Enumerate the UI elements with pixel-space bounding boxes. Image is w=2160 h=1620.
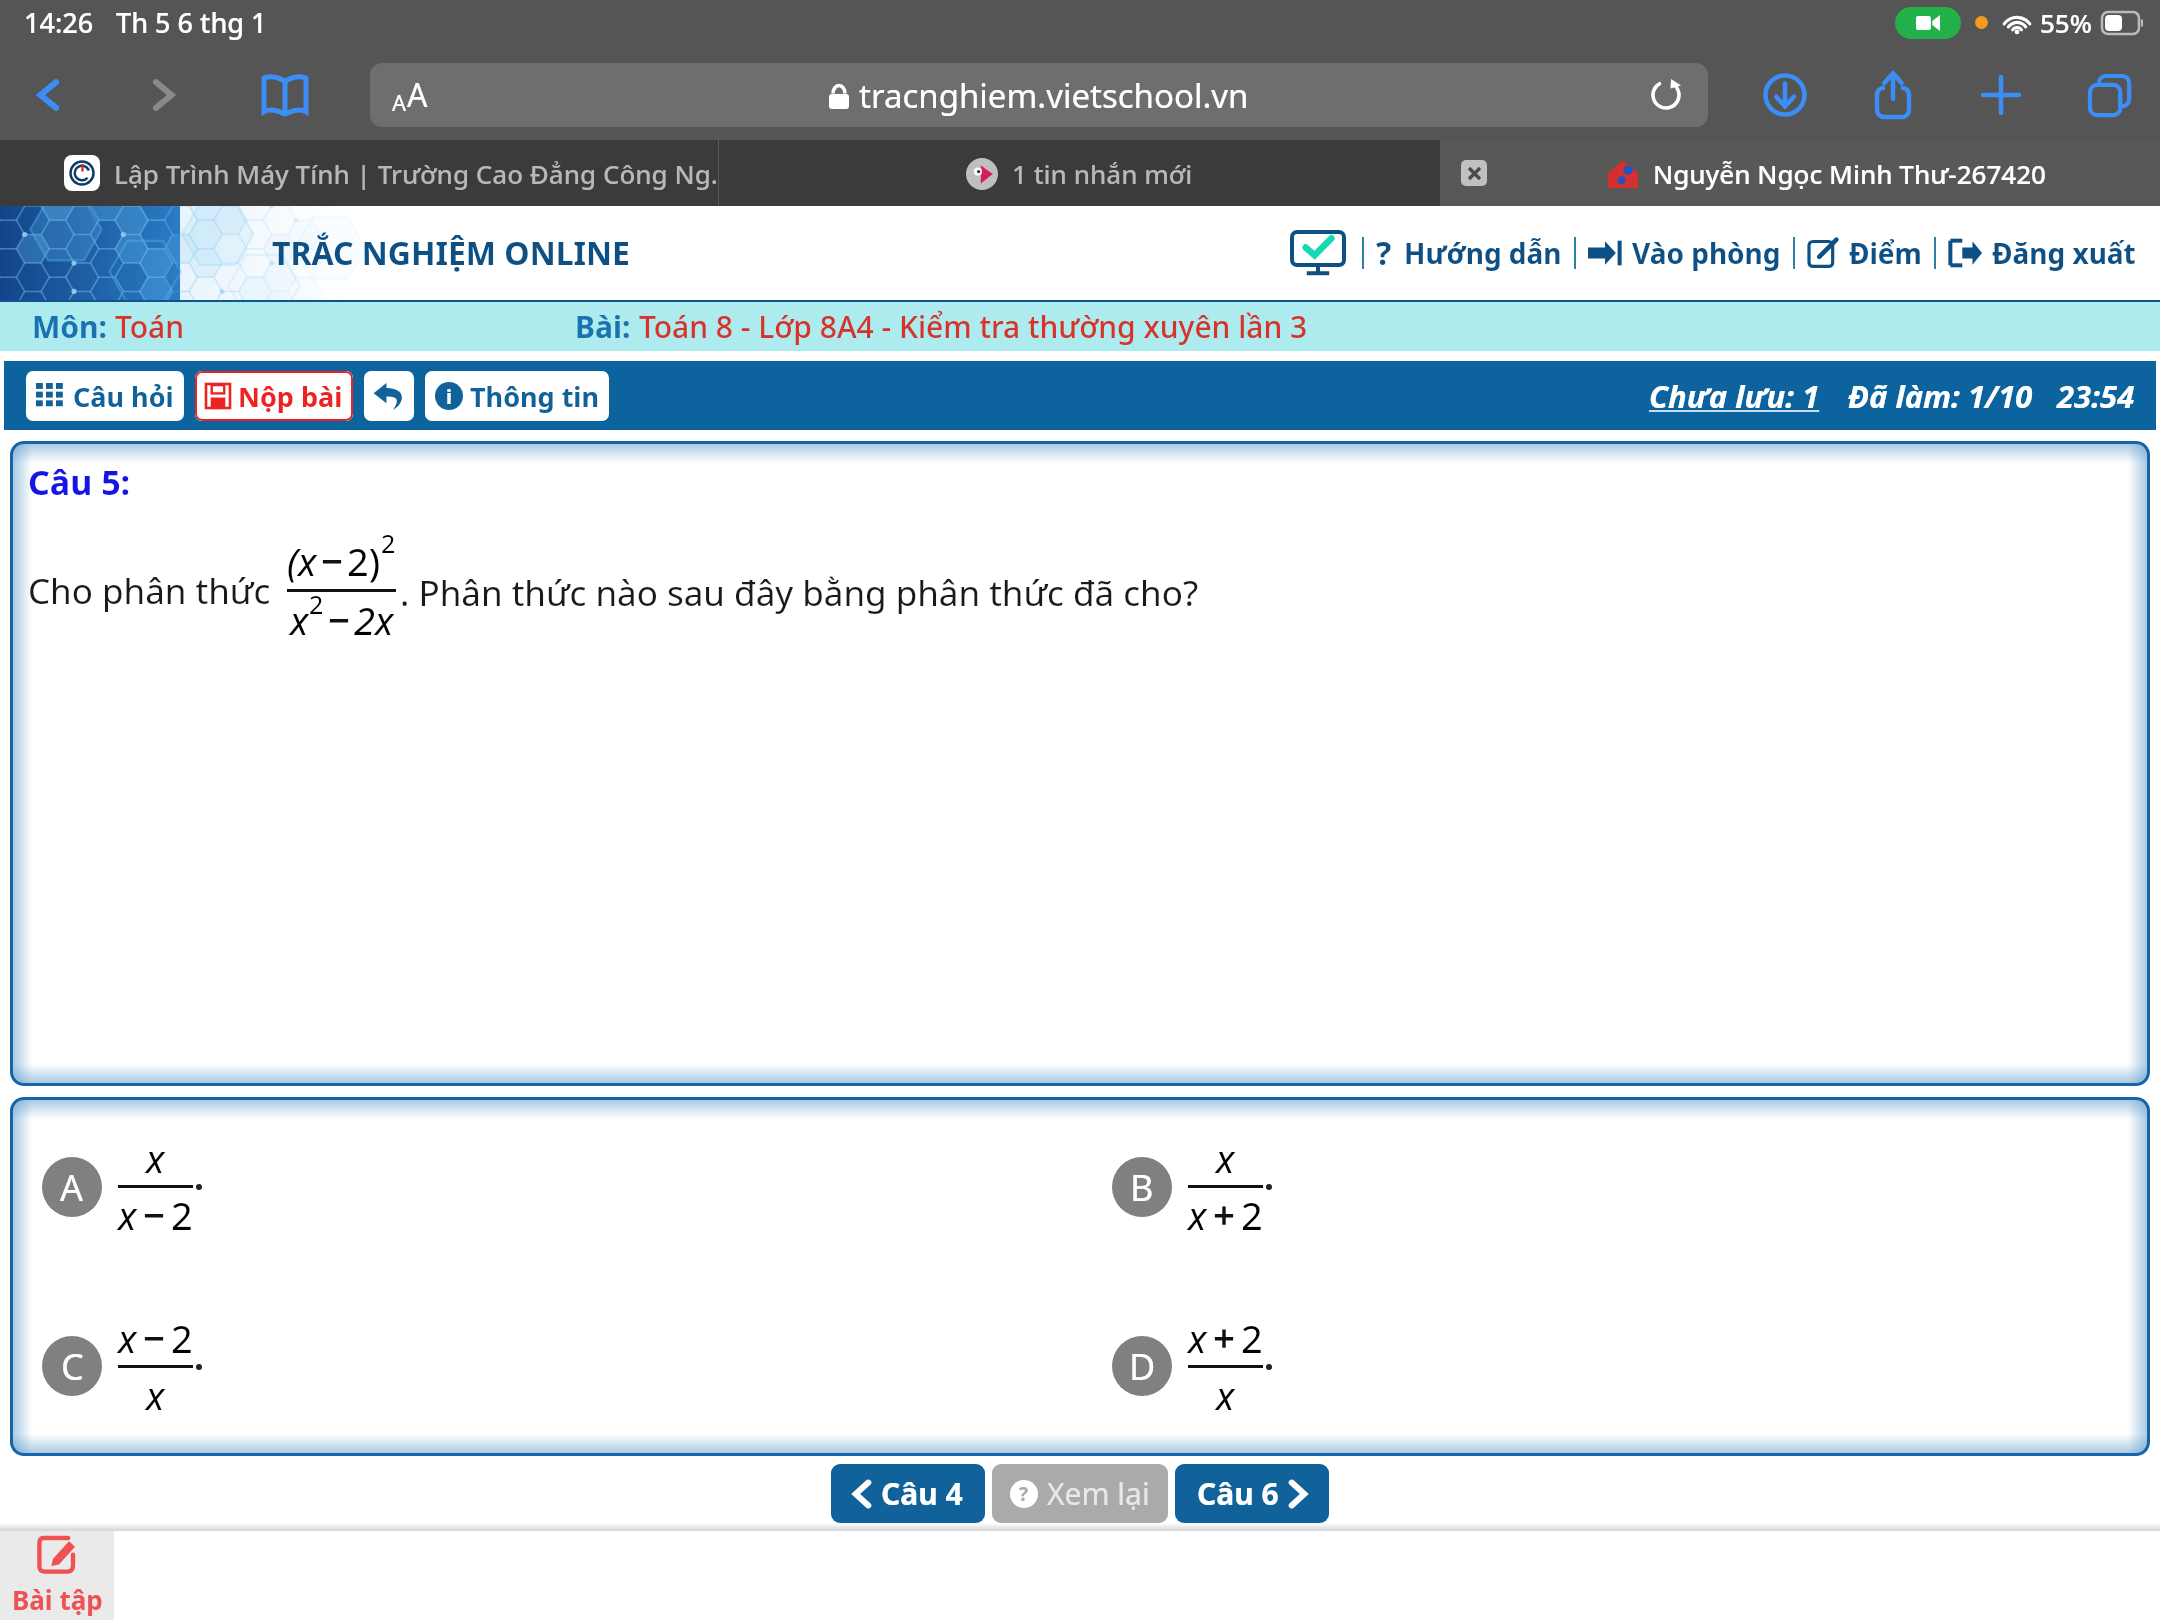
staticText: 2) xyxy=(347,535,381,587)
staticText: Lập Trình Máy Tính | Trường Cao Đẳng Côn… xyxy=(114,156,718,191)
button[interactable]: Downloads xyxy=(1756,66,1814,124)
button[interactable]: Check xyxy=(1286,226,1350,280)
button[interactable]: Forward xyxy=(134,67,190,123)
button[interactable]: Câu hỏi xyxy=(26,371,184,421)
button[interactable]: Nộp bài xyxy=(195,371,353,421)
staticText: x xyxy=(118,1189,137,1241)
staticText: x xyxy=(118,1312,137,1364)
staticText: A xyxy=(392,87,407,117)
button[interactable]: 1 tin nhắn mới xyxy=(719,140,1440,206)
staticText: B xyxy=(1130,1163,1154,1212)
staticText: Chưa lưu: 1 xyxy=(1649,375,1820,417)
staticText: D xyxy=(1129,1342,1156,1391)
staticText: ? xyxy=(1376,231,1392,275)
staticText: x xyxy=(1216,1369,1235,1421)
button[interactable]: New tab xyxy=(1972,66,2030,124)
button[interactable]: Close tab xyxy=(1440,140,2160,206)
button[interactable]: Câu 4 xyxy=(831,1464,985,1523)
button[interactable]: Câu 6 xyxy=(1175,1464,1329,1523)
staticText: 2 xyxy=(1241,1189,1263,1241)
staticText: tracnghiem.vietschool.vn xyxy=(859,73,1249,118)
staticText: Th 5 6 thg 1 xyxy=(116,4,267,41)
button[interactable]: C xyxy=(10,1276,1080,1456)
staticText: . Phân thức nào sau đây bằng phân thức đ… xyxy=(400,569,1199,617)
staticText: Đã làm: 1/10 xyxy=(1848,375,2033,417)
staticText: x xyxy=(146,1132,165,1184)
button[interactable]: D xyxy=(1080,1276,2150,1456)
staticText: Nộp bài xyxy=(238,378,343,415)
staticText: Bài: xyxy=(575,306,639,347)
staticText: A xyxy=(60,1163,84,1212)
staticText: 1 tin nhắn mới xyxy=(1012,156,1193,191)
staticText: A xyxy=(407,73,428,117)
staticText: Nguyễn Ngọc Minh Thư-267420 xyxy=(1653,156,2046,191)
button[interactable]: Lập Trình Máy Tính | Trường Cao Đẳng Côn… xyxy=(0,140,718,206)
staticText: x xyxy=(1216,1132,1235,1184)
button[interactable]: Bookmarks xyxy=(254,64,316,126)
button[interactable]: B xyxy=(1080,1097,2150,1276)
staticText: 2 xyxy=(309,587,324,621)
button[interactable]: i xyxy=(425,371,609,421)
button[interactable]: Bài tập xyxy=(0,1531,114,1620)
button[interactable]: ? xyxy=(992,1464,1168,1523)
staticText: Câu 4 xyxy=(881,1473,963,1514)
button[interactable]: Back xyxy=(364,371,414,421)
staticText: Bài tập xyxy=(12,1582,103,1617)
button[interactable]: ? xyxy=(1376,231,1562,275)
button[interactable]: Vào phòng xyxy=(1588,234,1781,272)
staticText: i xyxy=(446,383,452,410)
staticText: 2 xyxy=(381,526,396,560)
staticText: Toán 8 - Lớp 8A4 - Kiểm tra thường xuyên… xyxy=(639,306,1308,347)
staticText: x xyxy=(146,1369,165,1421)
button[interactable]: Show tabs xyxy=(2080,66,2138,124)
staticText: (x xyxy=(287,535,317,587)
staticText: Toán xyxy=(115,306,185,347)
button[interactable]: Share xyxy=(1864,66,1922,124)
staticText: x xyxy=(1188,1312,1207,1364)
button[interactable]: Close tab xyxy=(1461,160,1487,186)
button[interactable]: Back xyxy=(22,67,78,123)
button[interactable]: Reload xyxy=(1646,75,1686,115)
staticText: Môn: xyxy=(32,306,115,347)
staticText: TRẮC NGHIỆM ONLINE xyxy=(272,231,630,275)
staticText: Câu 5: xyxy=(28,459,131,505)
button[interactable]: Đăng xuất xyxy=(1948,234,2136,272)
staticText: x xyxy=(290,594,309,646)
staticText: 2 xyxy=(1241,1312,1263,1364)
staticText: Thông tin xyxy=(470,378,599,415)
staticText: 2 xyxy=(171,1189,193,1241)
button[interactable]: A xyxy=(370,63,1708,127)
staticText: 2 xyxy=(171,1312,193,1364)
button[interactable]: A xyxy=(10,1097,1080,1276)
staticText: Vào phòng xyxy=(1632,234,1781,272)
staticText: Hướng dẫn xyxy=(1404,234,1562,272)
staticText: Đăng xuất xyxy=(1992,234,2136,272)
staticText: C xyxy=(61,1342,84,1391)
staticText: Câu 6 xyxy=(1197,1473,1279,1514)
staticText: ? xyxy=(1019,1481,1029,1507)
staticText: Câu hỏi xyxy=(73,378,174,415)
staticText: 55% xyxy=(2040,5,2092,40)
staticText: 2x xyxy=(354,594,394,646)
staticText: 23:54 xyxy=(2057,375,2135,417)
staticText: 14:26 xyxy=(24,4,94,41)
staticText: Cho phân thức xyxy=(28,567,271,615)
staticText: x xyxy=(1188,1189,1207,1241)
staticText: Xem lại xyxy=(1047,1473,1150,1514)
staticText: Điểm xyxy=(1849,234,1922,272)
button[interactable]: Điểm xyxy=(1807,234,1922,272)
